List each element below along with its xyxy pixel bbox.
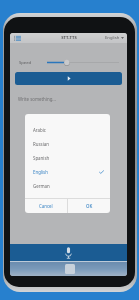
staticText: OK: [86, 203, 93, 209]
button[interactable]: German: [25, 179, 110, 193]
staticText: German: [33, 183, 50, 189]
button[interactable]: Cancel: [25, 199, 67, 213]
button[interactable]: English: [25, 165, 110, 179]
staticText: STT-TTS: [61, 35, 77, 41]
button[interactable]: OK: [68, 199, 110, 213]
button[interactable]: Menu: [12, 34, 22, 43]
staticText: Write something...: [18, 96, 56, 102]
button[interactable]: Arabic: [25, 123, 110, 137]
button[interactable]: Russian: [25, 137, 110, 151]
staticText: English: [33, 169, 48, 175]
button[interactable]: Home: [65, 264, 75, 274]
staticText: English: [105, 35, 120, 41]
button[interactable]: Microphone: [10, 244, 127, 261]
staticText: Cancel: [39, 203, 53, 209]
staticText: Spanish: [33, 155, 50, 161]
staticText: Speed: [19, 60, 32, 66]
staticText: Russian: [33, 141, 49, 147]
button[interactable]: English: [105, 35, 124, 41]
staticText: Arabic: [33, 127, 46, 133]
button[interactable]: Play: [15, 72, 122, 85]
button[interactable]: Spanish: [25, 151, 110, 165]
